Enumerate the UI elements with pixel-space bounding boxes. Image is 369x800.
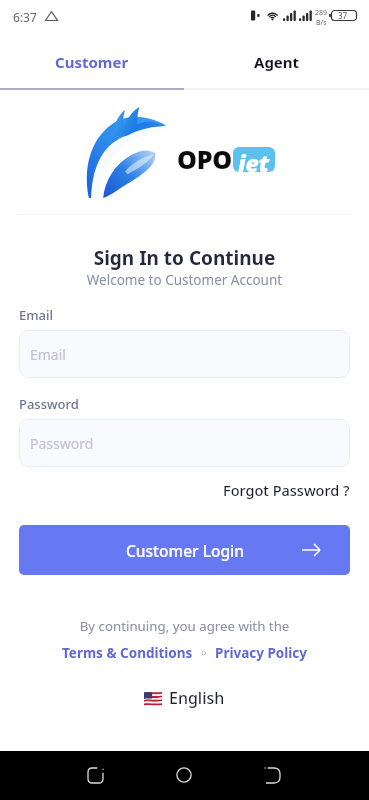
button[interactable]: Agent <box>184 36 369 88</box>
staticText: English <box>169 687 225 709</box>
staticText: Customer Login <box>126 540 244 561</box>
staticText: jet <box>238 147 270 172</box>
staticText: Email <box>30 345 66 364</box>
staticText: 6:37 <box>13 9 37 25</box>
staticText: OPO <box>177 142 232 176</box>
button[interactable]: Email <box>19 330 350 378</box>
staticText: By continuing, you agree with the <box>0 617 369 635</box>
staticText: ◦ <box>193 644 215 662</box>
button[interactable]: Recents <box>253 755 293 795</box>
staticText: Welcome to Customer Account <box>0 271 369 289</box>
staticText: Password <box>30 434 94 453</box>
button[interactable]: Password <box>19 419 350 467</box>
staticText: 37 <box>338 10 348 21</box>
staticText: Agent <box>254 52 300 72</box>
staticText: Customer <box>55 52 129 72</box>
button[interactable]: English <box>144 687 225 709</box>
staticText: B/s <box>316 18 327 28</box>
button[interactable]: Back <box>75 755 115 795</box>
staticText: Password <box>19 395 79 413</box>
button[interactable]: Terms & Conditions <box>62 644 193 662</box>
staticText: Sign In to Continue <box>0 245 369 271</box>
button[interactable]: Privacy Policy <box>215 644 307 662</box>
staticText: Email <box>19 306 54 324</box>
button[interactable]: Customer Login <box>19 525 350 575</box>
staticText: 289 <box>315 8 328 18</box>
button[interactable]: Forgot Password ? <box>223 480 350 500</box>
button[interactable]: Home <box>164 755 204 795</box>
button[interactable]: Customer <box>0 36 184 88</box>
